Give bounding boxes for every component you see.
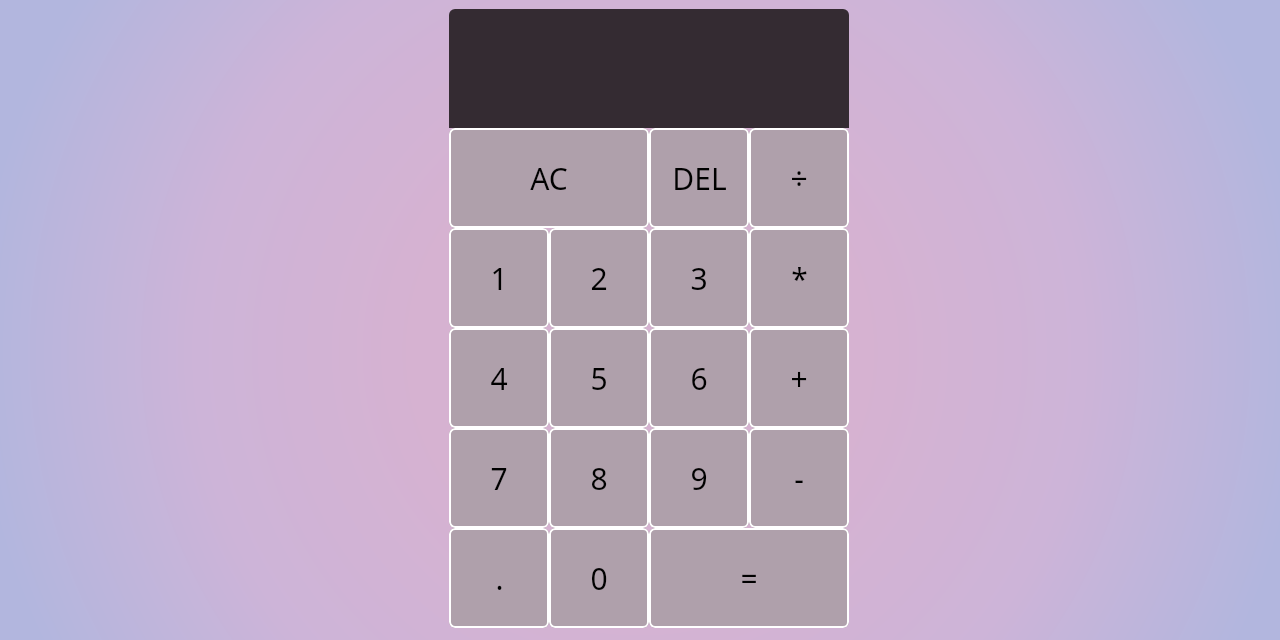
staticText: 8 [590, 458, 608, 499]
staticText: 1 [490, 258, 508, 299]
staticText: 0 [590, 558, 608, 599]
staticText: 6 [690, 358, 708, 399]
staticText: 2 [590, 258, 608, 299]
button[interactable]: DEL [649, 128, 749, 228]
button[interactable]: 8 [549, 428, 649, 528]
staticText: = [740, 558, 758, 599]
staticText: 7 [490, 458, 508, 499]
staticText: DEL [672, 158, 727, 199]
staticText: ÷ [790, 158, 808, 199]
staticText: - [794, 458, 804, 499]
button[interactable]: Decimal point [449, 528, 549, 628]
button[interactable]: Multiply [749, 228, 849, 328]
button[interactable]: 2 [549, 228, 649, 328]
button[interactable]: 7 [449, 428, 549, 528]
staticText: 5 [590, 358, 608, 399]
staticText: . [495, 558, 504, 599]
button[interactable]: Minus [749, 428, 849, 528]
button[interactable]: 3 [649, 228, 749, 328]
button[interactable]: AC [449, 128, 649, 228]
staticText: + [790, 358, 808, 399]
button[interactable]: 6 [649, 328, 749, 428]
staticText: 9 [690, 458, 708, 499]
button[interactable]: 1 [449, 228, 549, 328]
button[interactable]: Divide [749, 128, 849, 228]
staticText: 4 [490, 358, 508, 399]
button[interactable]: Equals [649, 528, 849, 628]
button[interactable]: 5 [549, 328, 649, 428]
button[interactable]: 9 [649, 428, 749, 528]
button[interactable]: 4 [449, 328, 549, 428]
staticText: * [791, 258, 808, 299]
staticText: 3 [690, 258, 708, 299]
staticText: AC [530, 158, 568, 199]
button[interactable]: 0 [549, 528, 649, 628]
button[interactable]: Plus [749, 328, 849, 428]
